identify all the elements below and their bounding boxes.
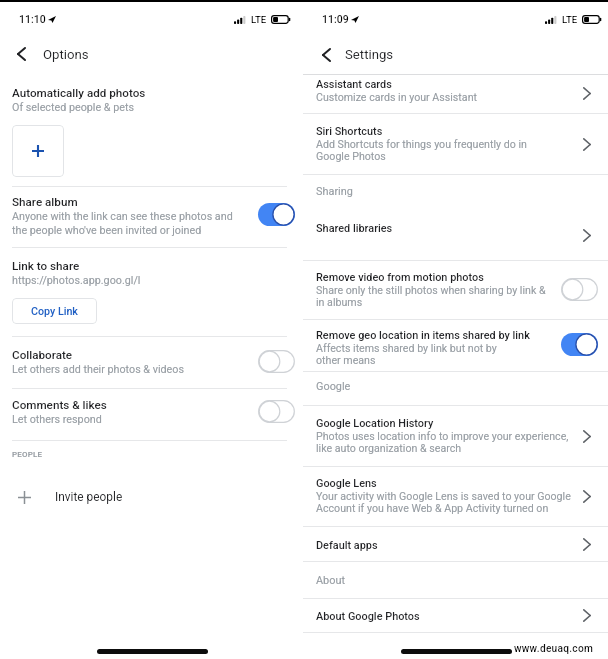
staticText: Remove video from motion photos [316,271,484,284]
button[interactable]: Siri Shortcuts [303,114,608,174]
staticText: Customize cards in your Assistant [316,91,477,103]
button[interactable]: Switch off [258,400,295,423]
staticText: Sharing [316,185,353,198]
staticText: Shared libraries [316,222,393,235]
staticText: Settings [345,47,394,62]
staticText: About [316,574,345,587]
button[interactable]: Assistant cards [303,74,608,113]
button[interactable]: Google Location History [303,406,608,466]
button[interactable]: Add people [12,125,64,177]
staticText: Invite people [55,490,123,504]
button[interactable]: Invite people [0,481,298,513]
button[interactable]: Remove video from motion photos [303,261,608,319]
staticText: Photos uses location info to improve you… [316,430,569,442]
button[interactable]: About Google Photos [303,599,608,632]
staticText: Share album [12,195,78,209]
staticText: Remove geo location in items shared by l… [316,329,530,342]
staticText: Of selected people & pets [12,101,134,114]
staticText: https://photos.app.goo.gl/l [12,274,141,287]
staticText: Assistant cards [316,78,392,91]
button[interactable]: Share album [0,187,298,247]
button[interactable]: Switch off [561,278,598,301]
button[interactable]: Switch on [258,203,295,226]
button[interactable]: Shared libraries [303,210,608,260]
staticText: Copy Link [31,305,78,318]
staticText: Google [316,380,351,393]
staticText: Anyone with the link can see these photo… [12,210,244,236]
staticText: 11:10 [19,13,46,25]
button[interactable]: Switch off [258,350,295,373]
staticText: other means [316,354,376,366]
staticText: Siri Shortcuts [316,125,383,138]
staticText: Default apps [316,539,378,552]
staticText: Share only the still photos when sharing… [316,284,546,296]
staticText: Let others respond [12,413,102,426]
staticText: Account if you have Web & App Activity t… [316,502,549,514]
staticText: PEOPLE [12,450,43,459]
staticText: Options [43,47,89,62]
staticText: LTE [562,14,578,25]
staticText: Google Lens [316,477,377,490]
button[interactable]: Google Lens [303,467,608,526]
button[interactable]: Collaborate [0,337,298,388]
button[interactable]: Comments & likes [0,389,298,440]
staticText: Collaborate [12,348,73,362]
staticText: About Google Photos [316,610,420,623]
staticText: in albums [316,296,363,308]
staticText: Comments & likes [12,398,107,412]
staticText: LTE [251,14,267,25]
staticText: Link to share [12,259,80,273]
staticText: Your activity with Google Lens is saved … [316,490,571,502]
staticText: Affects items shared by link but not by [316,342,497,354]
button[interactable]: Copy Link [12,298,97,324]
staticText: Automatically add photos [12,86,146,100]
staticText: www.deuaq.com [514,643,594,655]
button[interactable]: Default apps [303,527,608,561]
button[interactable]: Switch on [561,333,598,356]
button[interactable]: Back [310,39,342,71]
staticText: Add Shortcuts for things you frequently … [316,138,527,150]
staticText: Google Location History [316,417,434,430]
staticText: Google Photos [316,150,386,162]
staticText: 11:09 [322,13,349,25]
button[interactable]: Remove geo location in items shared by l… [303,320,608,371]
button[interactable]: Back [5,38,37,70]
staticText: like auto organization & search [316,442,462,454]
staticText: Let others add their photos & videos [12,363,184,376]
